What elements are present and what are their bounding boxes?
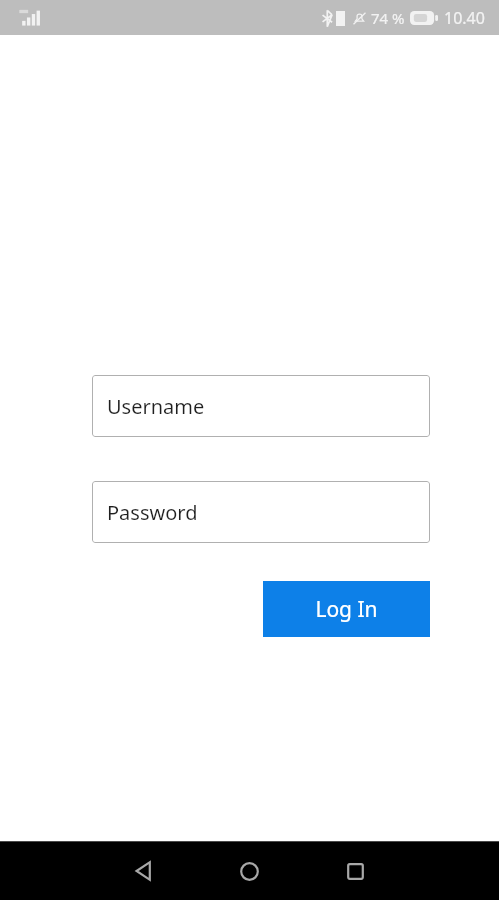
- button[interactable]: Home: [227, 849, 271, 893]
- button[interactable]: Recent apps: [333, 849, 377, 893]
- button[interactable]: Password: [92, 481, 430, 543]
- button[interactable]: Log In: [263, 581, 430, 637]
- staticText: Password: [107, 499, 198, 526]
- staticText: Username: [107, 393, 205, 420]
- staticText: Log In: [315, 595, 378, 624]
- button[interactable]: Back: [121, 849, 165, 893]
- staticText: 74 %: [371, 8, 405, 28]
- staticText: 10.40: [444, 7, 485, 29]
- button[interactable]: Username: [92, 375, 430, 437]
